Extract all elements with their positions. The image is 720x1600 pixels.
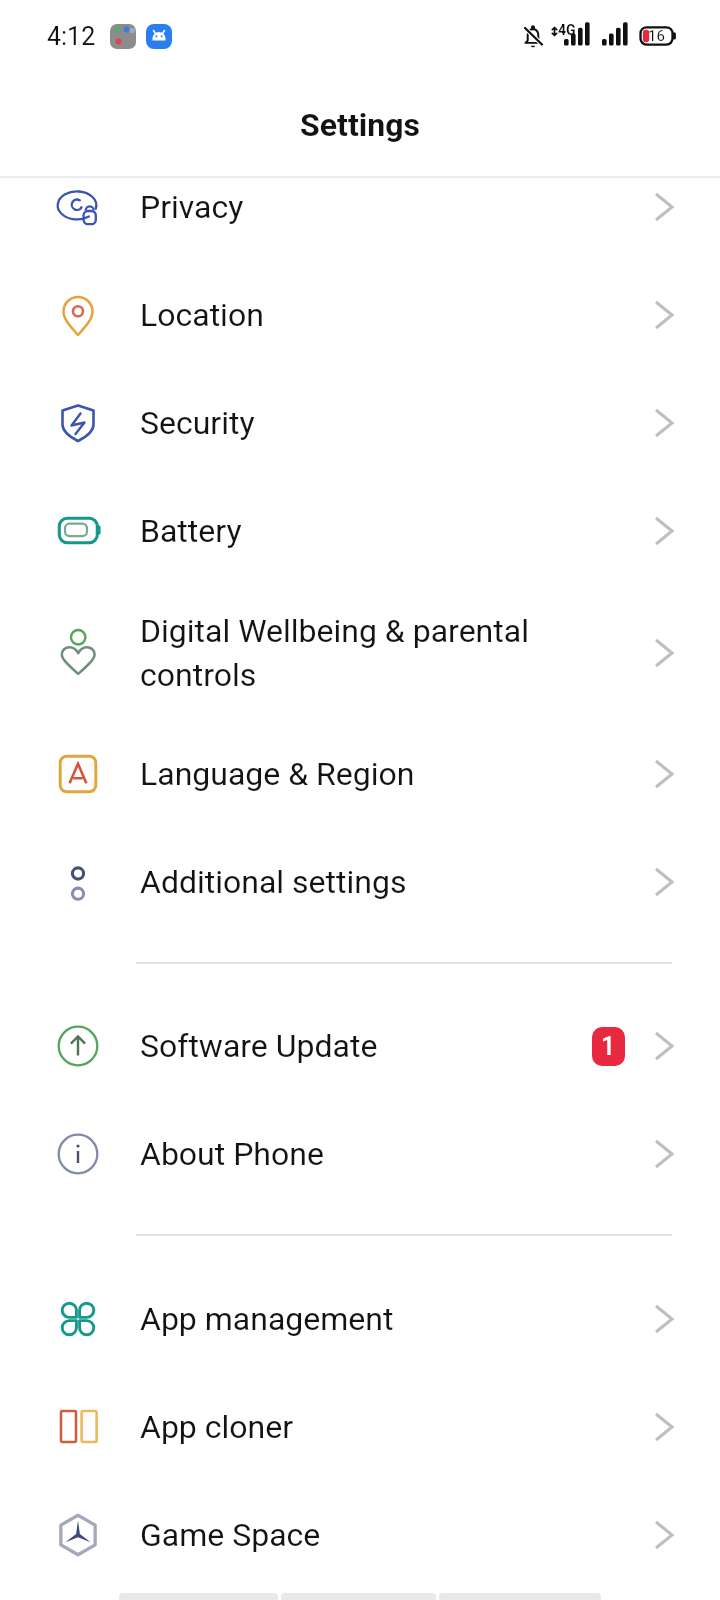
button[interactable]: Security	[0, 369, 720, 477]
staticText: Location	[140, 296, 636, 334]
staticText: App cloner	[140, 1408, 636, 1446]
button[interactable]: Location	[0, 261, 720, 369]
staticText: App management	[140, 1300, 636, 1338]
button[interactable]: Additional settings	[0, 828, 720, 936]
button[interactable]: App cloner	[0, 1373, 720, 1481]
button[interactable]: Privacy	[0, 153, 720, 261]
staticText: 4G	[558, 22, 576, 38]
staticText: 1	[601, 1032, 616, 1061]
other: Software update	[56, 1024, 100, 1068]
staticText: Privacy	[140, 188, 636, 226]
staticText: Software Update	[140, 1027, 572, 1065]
other: Digital Wellbeing	[56, 631, 100, 675]
staticText: Digital Wellbeing & parental controls	[140, 612, 636, 694]
staticText: About Phone	[140, 1135, 636, 1173]
button[interactable]: Game Space	[0, 1481, 720, 1589]
staticText: Settings	[300, 106, 420, 144]
other: Privacy	[56, 185, 100, 229]
other: Game Space	[56, 1513, 100, 1557]
button[interactable]: App management	[0, 1265, 720, 1373]
other: Location	[56, 293, 100, 337]
staticText: 4:12	[47, 22, 96, 51]
staticText: 16	[648, 27, 665, 45]
button[interactable]: About phone	[0, 1100, 720, 1208]
other: App management	[56, 1297, 100, 1341]
other: Security	[56, 401, 100, 445]
other: App cloner	[56, 1405, 100, 1449]
other: About phone	[56, 1132, 100, 1176]
button[interactable]: Software update	[0, 992, 720, 1100]
staticText: Game Space	[140, 1516, 636, 1554]
staticText: Language & Region	[140, 755, 636, 793]
staticText: Additional settings	[140, 863, 636, 901]
other: Additional settings	[56, 860, 100, 904]
other: Battery	[56, 509, 100, 553]
staticText: Battery	[140, 512, 636, 550]
button[interactable]: Language and Region	[0, 720, 720, 828]
button[interactable]: Battery	[0, 477, 720, 585]
staticText: Security	[140, 404, 636, 442]
other: Language and Region	[56, 752, 100, 796]
button[interactable]: Digital Wellbeing	[0, 585, 720, 720]
